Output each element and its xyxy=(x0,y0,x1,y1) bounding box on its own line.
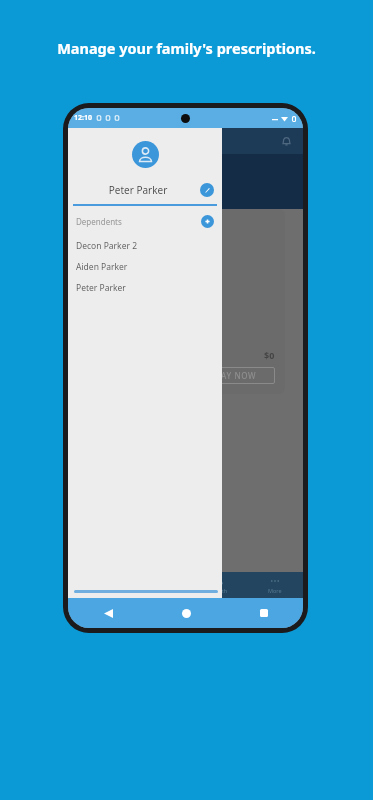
staticText: Aiden Parker xyxy=(76,261,128,273)
staticText: Decon Parker 2 xyxy=(76,240,138,252)
staticText: $0 xyxy=(264,349,275,361)
staticText: Health xyxy=(210,587,228,594)
staticText: PHARMACY. xyxy=(78,175,189,201)
staticText: More xyxy=(268,587,282,594)
staticText: Peter Parker xyxy=(76,282,126,294)
button[interactable]: Home xyxy=(175,602,197,624)
button[interactable]: Back xyxy=(97,602,119,624)
button[interactable]: Peter Parker xyxy=(68,277,222,298)
button[interactable]: Notifications xyxy=(277,132,295,150)
button[interactable]: Decon Parker 2 xyxy=(68,235,222,256)
staticText: 12:10 xyxy=(74,113,92,123)
staticText: PAY NOW xyxy=(216,370,257,381)
staticText: Dependents xyxy=(76,216,201,227)
button[interactable]: Aiden Parker xyxy=(68,256,222,277)
staticText: Manage your family's prescriptions. xyxy=(0,38,373,58)
button[interactable]: More xyxy=(247,576,303,594)
button[interactable]: Edit profile xyxy=(200,183,214,197)
button[interactable]: Add dependent xyxy=(201,215,214,228)
staticText: Peter Parker xyxy=(76,183,200,197)
button[interactable]: Recent apps xyxy=(253,602,275,624)
button[interactable]: PAY NOW xyxy=(197,367,275,384)
button[interactable]: Health xyxy=(191,576,247,594)
